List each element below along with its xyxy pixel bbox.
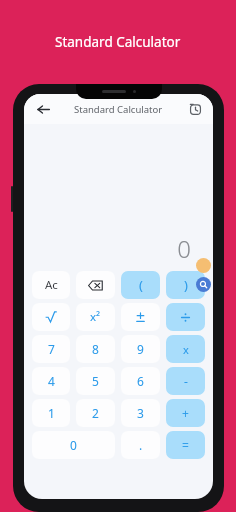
button[interactable]: Ac <box>32 271 70 299</box>
button[interactable]: 3 <box>121 399 160 427</box>
staticText: 4 <box>48 373 55 389</box>
button[interactable]: Assistant <box>196 258 211 273</box>
staticText: x <box>183 342 189 357</box>
button[interactable]: Square root <box>32 303 70 331</box>
button[interactable]: ( <box>121 271 160 299</box>
staticText: 5 <box>92 373 99 389</box>
button[interactable]: 1 <box>32 399 70 427</box>
staticText: + <box>182 405 189 421</box>
staticText: 0 <box>177 232 191 265</box>
button[interactable]: Back <box>32 98 54 120</box>
button[interactable]: + <box>166 399 205 427</box>
button[interactable]: - <box>166 367 205 395</box>
button[interactable]: 8 <box>76 335 115 363</box>
staticText: 8 <box>92 341 99 357</box>
staticText: 9 <box>137 341 144 357</box>
button[interactable]: Plus minus <box>121 303 160 331</box>
button[interactable]: 2 <box>76 399 115 427</box>
staticText: 3 <box>137 405 144 421</box>
staticText: x² <box>90 309 101 325</box>
staticText: ) <box>184 276 188 294</box>
button[interactable]: 7 <box>32 335 70 363</box>
staticText: . <box>139 437 143 453</box>
staticText: 2 <box>92 405 99 421</box>
staticText: - <box>184 373 188 389</box>
staticText: 6 <box>137 373 144 389</box>
button[interactable]: = <box>166 431 205 459</box>
button[interactable]: History <box>185 99 205 119</box>
staticText: = <box>182 437 189 453</box>
staticText: 0 <box>70 437 77 453</box>
staticText: Standard Calculator <box>55 33 181 51</box>
button[interactable]: 4 <box>32 367 70 395</box>
button[interactable]: Search <box>196 277 211 292</box>
staticText: Standard Calculator <box>74 103 163 116</box>
button[interactable]: 0 <box>32 431 115 459</box>
staticText: Ac <box>45 277 58 293</box>
staticText: 1 <box>48 405 55 421</box>
button[interactable]: . <box>121 431 160 459</box>
button[interactable]: x <box>166 335 205 363</box>
button[interactable]: 6 <box>121 367 160 395</box>
button[interactable]: ) <box>166 271 205 299</box>
button[interactable]: 5 <box>76 367 115 395</box>
button[interactable]: Backspace <box>76 271 115 299</box>
button[interactable]: 9 <box>121 335 160 363</box>
button[interactable]: x² <box>76 303 115 331</box>
button[interactable]: Divide <box>166 303 205 331</box>
staticText: ( <box>139 276 143 294</box>
staticText: 7 <box>48 341 55 357</box>
